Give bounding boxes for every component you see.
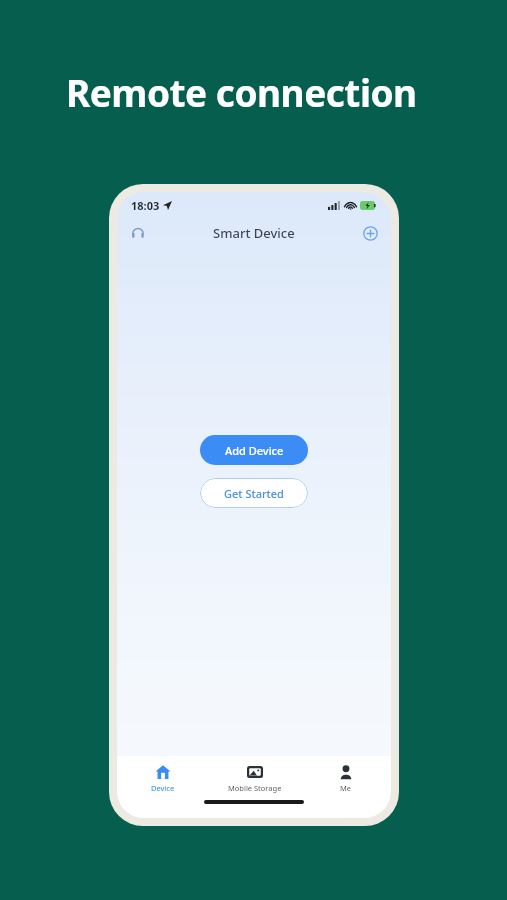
button[interactable]: Device	[117, 756, 209, 800]
button[interactable]: Me	[300, 756, 391, 800]
staticText: Smart Device	[213, 224, 295, 242]
button[interactable]: Add	[357, 220, 383, 246]
staticText: Get Started	[224, 486, 284, 501]
staticText: 18:03	[131, 198, 160, 213]
staticText: Add Device	[225, 443, 284, 458]
staticText: Remote connection	[66, 67, 417, 117]
button[interactable]: Add Device	[200, 435, 308, 465]
staticText: Me	[340, 783, 352, 793]
staticText: Device	[151, 783, 175, 793]
staticText: Mobile Storage	[228, 783, 282, 793]
button[interactable]: Support	[125, 220, 151, 246]
button[interactable]: Get Started	[200, 478, 308, 508]
button[interactable]: Mobile Storage	[209, 756, 300, 800]
